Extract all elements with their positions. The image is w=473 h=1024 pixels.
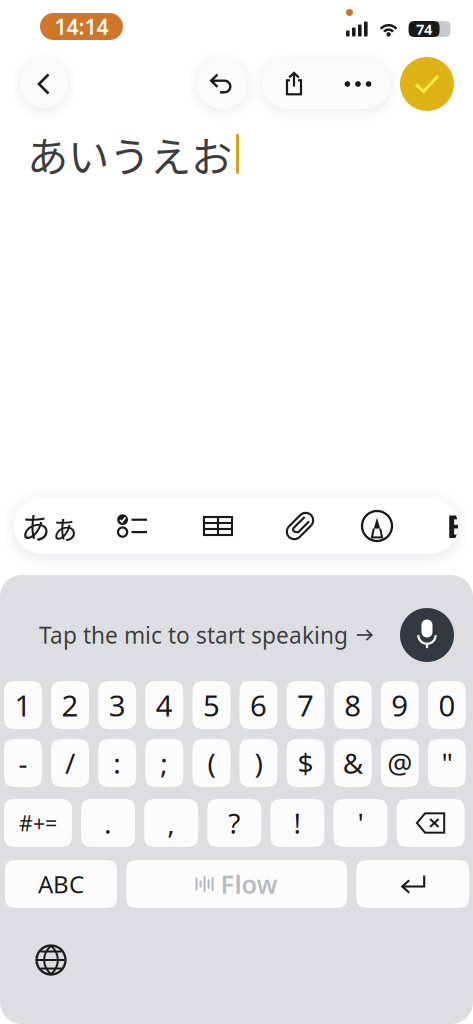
button[interactable]: ABC — [5, 860, 117, 908]
staticText: ? — [228, 804, 240, 842]
button[interactable]: ' — [333, 799, 387, 847]
button[interactable]: Table — [180, 498, 256, 554]
button[interactable]: " — [428, 739, 466, 787]
button[interactable]: 0 — [428, 681, 466, 729]
button[interactable]: 7 — [287, 681, 325, 729]
staticText: ( — [207, 744, 215, 782]
staticText: 74 — [416, 19, 432, 39]
staticText: ABC — [38, 868, 84, 900]
button[interactable]: Bold — [437, 498, 473, 554]
button[interactable]: 2 — [51, 681, 89, 729]
button[interactable]: 1 — [4, 681, 42, 729]
staticText: , — [167, 804, 175, 842]
button[interactable]: Flow — [126, 860, 347, 908]
button[interactable]: Attach file — [262, 498, 338, 554]
button[interactable]: More options — [326, 59, 390, 109]
button[interactable]: : — [98, 739, 136, 787]
button[interactable]: Next keyboard — [29, 938, 73, 982]
button[interactable]: Done — [400, 57, 454, 111]
button[interactable]: Share — [262, 59, 326, 109]
button[interactable]: 3 — [98, 681, 136, 729]
staticText: / — [65, 744, 75, 782]
button[interactable]: 8 — [334, 681, 372, 729]
staticText: 2 — [62, 685, 79, 724]
button[interactable]: Draw — [339, 498, 415, 554]
staticText: Tap the mic to start speaking — [39, 620, 348, 650]
staticText: $ — [298, 744, 314, 782]
staticText: 5 — [203, 685, 220, 724]
button[interactable]: Return — [356, 860, 469, 908]
button[interactable]: Dictate — [400, 608, 454, 662]
staticText: ; — [160, 744, 168, 782]
staticText: ) — [254, 744, 262, 782]
button[interactable]: 6 — [239, 681, 277, 729]
button[interactable]: ; — [145, 739, 183, 787]
button[interactable]: / — [51, 739, 89, 787]
staticText: & — [343, 744, 363, 782]
button[interactable]: ! — [270, 799, 324, 847]
button[interactable]: - — [4, 739, 42, 787]
staticText: " — [441, 744, 452, 782]
button[interactable]: #+= — [4, 799, 72, 847]
button[interactable]: Delete — [397, 799, 465, 847]
staticText: @ — [387, 744, 412, 782]
button[interactable]: $ — [287, 739, 325, 787]
button[interactable]: ) — [239, 739, 277, 787]
button[interactable]: Back — [20, 60, 68, 108]
staticText: : — [113, 744, 121, 782]
staticText: 8 — [344, 685, 361, 724]
button[interactable]: , — [144, 799, 198, 847]
staticText: 1 — [14, 685, 31, 724]
button[interactable]: @ — [381, 739, 419, 787]
button[interactable]: ( — [192, 739, 230, 787]
button[interactable]: 4 — [145, 681, 183, 729]
staticText: 0 — [438, 685, 455, 724]
staticText: 4 — [156, 685, 173, 724]
staticText: ! — [293, 804, 301, 842]
staticText: 3 — [109, 685, 126, 724]
button[interactable]: 9 — [381, 681, 419, 729]
staticText: あぁ — [21, 505, 79, 547]
button[interactable]: ? — [207, 799, 261, 847]
button[interactable]: 5 — [192, 681, 230, 729]
staticText: . — [104, 804, 112, 842]
button[interactable]: & — [334, 739, 372, 787]
staticText: - — [18, 744, 27, 782]
staticText: ' — [357, 804, 363, 842]
staticText: 6 — [250, 685, 267, 724]
staticText: #+= — [19, 809, 57, 837]
staticText: 14:14 — [54, 12, 108, 41]
button[interactable]: Checklist — [95, 498, 171, 554]
staticText: B — [446, 505, 467, 547]
staticText: Flow — [221, 867, 278, 901]
staticText: あいうえお — [27, 124, 232, 184]
button[interactable]: Undo — [197, 59, 247, 109]
staticText: 9 — [391, 685, 408, 724]
staticText: 7 — [297, 685, 314, 724]
button[interactable]: . — [81, 799, 135, 847]
button[interactable]: Text format — [12, 498, 88, 554]
